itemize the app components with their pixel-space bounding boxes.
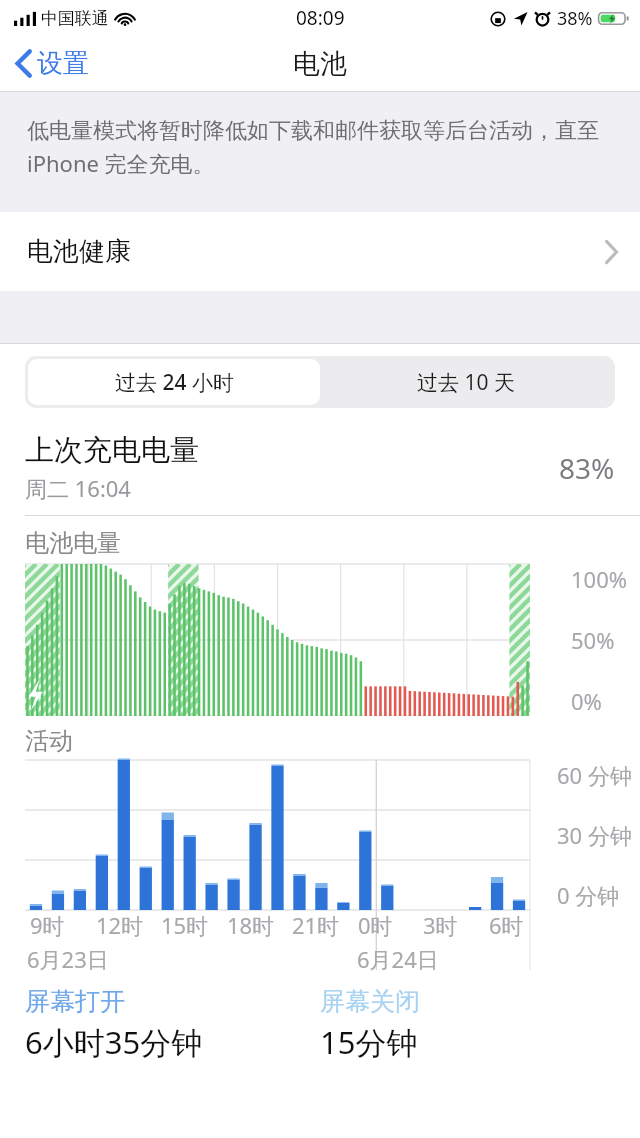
- staticText: 6时: [489, 910, 524, 940]
- button[interactable]: 电池健康: [0, 212, 640, 291]
- button[interactable]: 设置: [0, 41, 99, 86]
- staticText: 21时: [292, 910, 340, 940]
- button[interactable]: 过去 24 小时: [28, 359, 320, 405]
- staticText: 活动: [25, 726, 73, 756]
- staticText: 3时: [423, 910, 458, 940]
- staticText: 6月23日: [27, 944, 109, 974]
- staticText: 周二 16:04: [25, 473, 131, 503]
- staticText: 过去 10 天: [417, 368, 515, 397]
- staticText: 0%: [571, 686, 602, 716]
- staticText: 100%: [571, 564, 628, 594]
- staticText: 低电量模式将暂时降低如下载和邮件获取等后台活动，直至 iPhone 完全充电。: [27, 114, 618, 178]
- staticText: 0时: [358, 910, 393, 940]
- staticText: 电池电量: [25, 528, 121, 558]
- staticText: 6月24日: [357, 944, 439, 974]
- staticText: 6小时35分钟: [25, 1021, 203, 1063]
- staticText: 15分钟: [320, 1021, 418, 1063]
- staticText: 60 分钟: [557, 760, 632, 790]
- staticText: 电池健康: [27, 235, 131, 268]
- staticText: 30 分钟: [557, 820, 632, 850]
- staticText: 83%: [559, 449, 615, 487]
- staticText: 12时: [96, 910, 144, 940]
- staticText: 08:09: [296, 5, 345, 31]
- staticText: 过去 24 小时: [115, 368, 234, 397]
- staticText: 9时: [30, 910, 65, 940]
- staticText: 15时: [161, 910, 209, 940]
- button[interactable]: 过去 10 天: [320, 359, 612, 405]
- staticText: 38%: [557, 6, 593, 31]
- staticText: 电池: [293, 47, 347, 81]
- staticText: 中国联通: [41, 8, 109, 29]
- staticText: 50%: [571, 625, 615, 655]
- staticText: 上次充电电量: [25, 432, 199, 469]
- staticText: 屏幕打开: [25, 986, 125, 1017]
- staticText: 屏幕关闭: [320, 986, 420, 1017]
- staticText: 18时: [227, 910, 275, 940]
- staticText: 0 分钟: [557, 880, 620, 910]
- staticText: 设置: [37, 47, 89, 80]
